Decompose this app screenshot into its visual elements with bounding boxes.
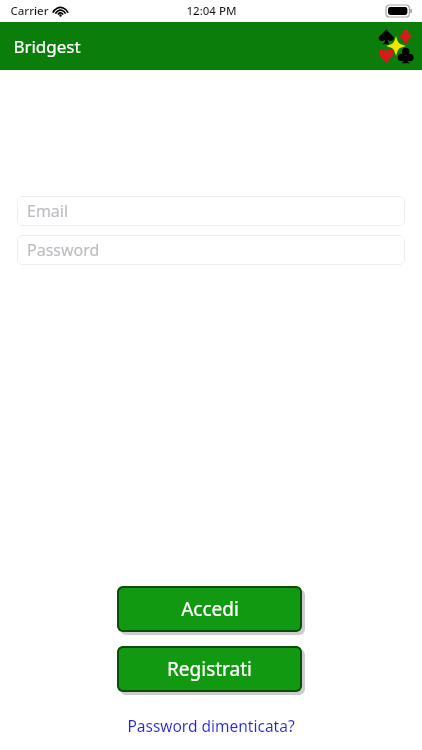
staticText: Email — [27, 200, 69, 222]
button[interactable]: Password — [17, 235, 405, 265]
button[interactable]: Registrati — [117, 646, 302, 692]
staticText: Registrati — [167, 656, 252, 682]
staticText: Carrier — [10, 3, 49, 19]
staticText: Bridgest — [13, 35, 81, 58]
staticText: Password dimenticata? — [127, 715, 295, 736]
button[interactable]: Bridgest logo — [374, 24, 418, 68]
button[interactable]: Password dimenticata? — [0, 715, 422, 736]
staticText: Password — [27, 239, 100, 261]
button[interactable]: Accedi — [117, 586, 302, 632]
staticText: 12:04 PM — [186, 3, 237, 19]
staticText: Accedi — [181, 596, 239, 622]
button[interactable]: Email — [17, 196, 405, 226]
